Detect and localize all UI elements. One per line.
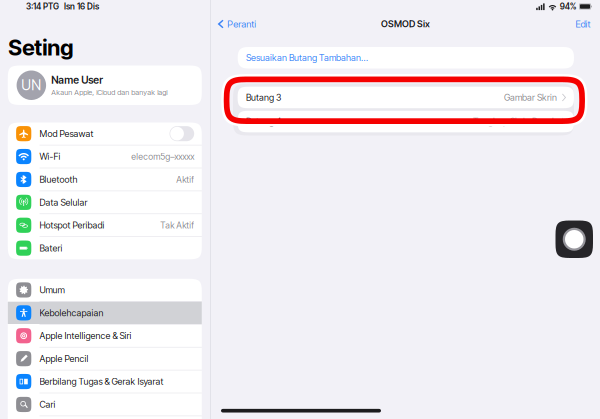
button[interactable]: Butang 3 (238, 87, 574, 108)
staticText: 3:14 PTG (26, 1, 59, 12)
button[interactable]: Cari (8, 393, 202, 416)
button[interactable]: Umum (8, 279, 202, 301)
staticText: Berbilang Tugas & Gerak Isyarat (39, 376, 163, 387)
staticText: Peranti (227, 18, 256, 30)
button[interactable]: Peranti (217, 15, 256, 33)
staticText: OSMOD Six (381, 18, 430, 29)
staticText: Data Selular (39, 197, 87, 208)
button[interactable]: Edit (575, 15, 590, 33)
staticText: Edit (575, 18, 590, 30)
staticText: elecom5g–xxxxx (131, 151, 194, 162)
staticText: Mod Pesawat (39, 128, 93, 139)
staticText: Kebolehcapaian (39, 307, 103, 318)
staticText: Cari (39, 399, 55, 410)
staticText: Umum (39, 284, 64, 295)
staticText: Wi-Fi (39, 151, 60, 162)
staticText: Gambar Skrin (504, 92, 557, 103)
staticText: Apple Pencil (39, 353, 88, 364)
button[interactable]: Berbilang Tugas & Gerak Isyarat (8, 370, 202, 393)
button[interactable]: Wi-Fi (8, 145, 202, 168)
button[interactable]: Bluetooth (8, 168, 202, 191)
button[interactable]: Apple Intelligence & Siri (8, 325, 202, 347)
staticText: Sesuaikan Butang Tambahan… (246, 52, 368, 63)
staticText: Butang 4 (246, 116, 281, 127)
button[interactable]: Kebolehcapaian (8, 302, 202, 324)
staticText: Bluetooth (39, 174, 77, 185)
staticText: Tak Aktif (160, 220, 194, 230)
staticText: Apple Intelligence & Siri (39, 330, 131, 341)
button[interactable]: Mod Pesawat (8, 122, 202, 145)
staticText: Butang 3 (246, 92, 281, 103)
staticText: Isn 16 Dis (64, 1, 99, 12)
button[interactable]: Apple Pencil (8, 347, 202, 370)
staticText: Seting (8, 34, 73, 61)
button[interactable]: Sesuaikan Butang Tambahan… (238, 47, 574, 68)
button[interactable]: Data Selular (8, 191, 202, 213)
staticText: Bateri (39, 243, 62, 254)
staticText: 94% (560, 1, 577, 12)
staticText: Tangkap Skrin Penuh (473, 116, 557, 127)
staticText: UN (21, 77, 41, 94)
staticText: Aktif (176, 174, 194, 185)
button[interactable]: Butang 4 (238, 111, 574, 132)
button[interactable]: Bateri (8, 237, 202, 259)
button[interactable]: AssistiveTouch (555, 220, 593, 258)
button[interactable]: UN (8, 65, 202, 105)
staticText: Akaun Apple, iCloud dan banyak lagi (51, 88, 167, 97)
button[interactable]: Hotspot Peribadi (8, 214, 202, 236)
staticText: Hotspot Peribadi (39, 220, 104, 231)
staticText: Name User (51, 74, 103, 86)
